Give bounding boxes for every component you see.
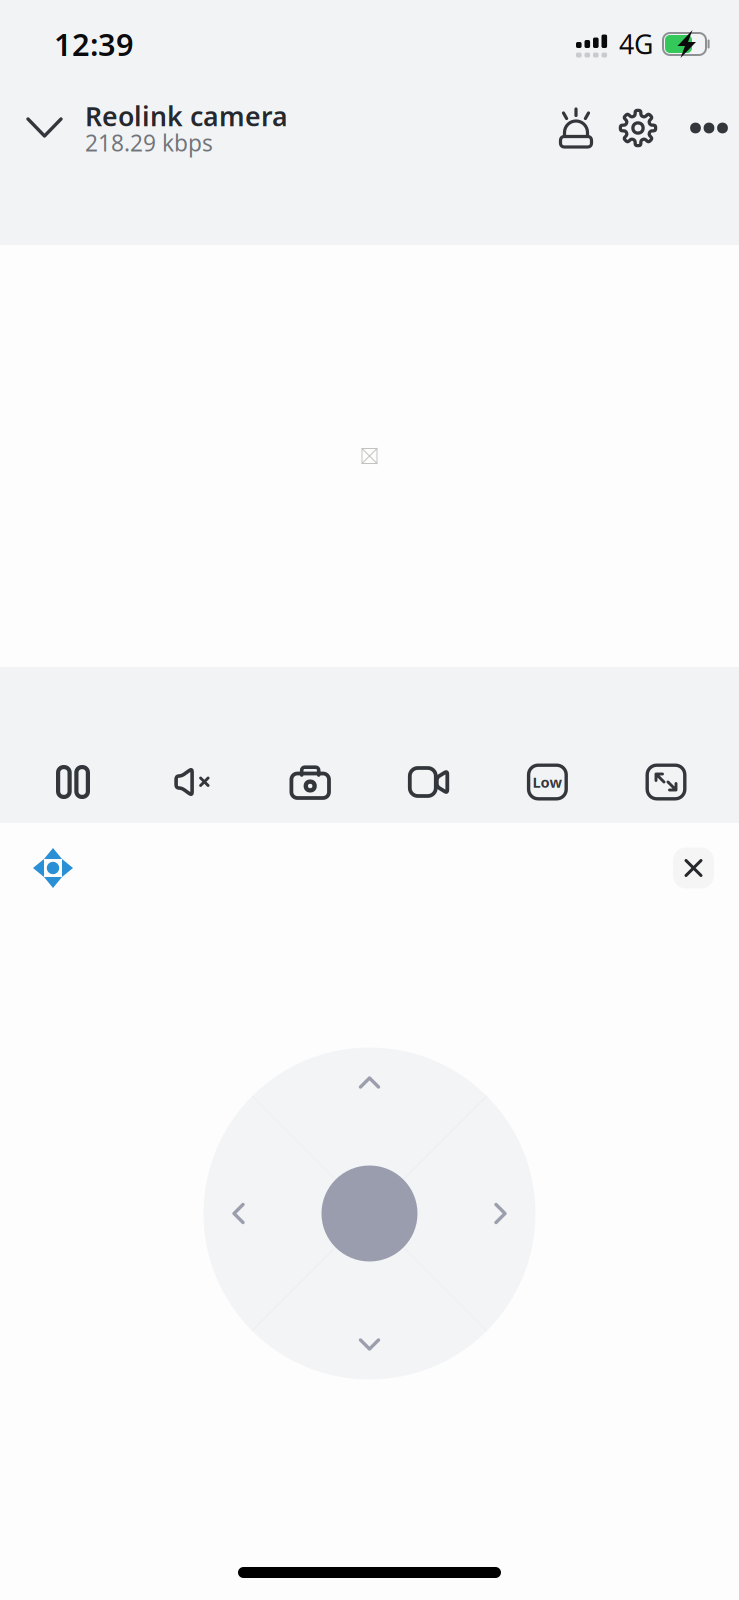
button[interactable]: More options (690, 99, 728, 157)
button[interactable]: Close (673, 847, 714, 888)
button[interactable]: Siren (559, 99, 593, 157)
button[interactable]: Mute (143, 752, 241, 812)
button[interactable]: Pause (24, 752, 122, 812)
button[interactable]: Record (380, 752, 478, 812)
button[interactable]: Settings (615, 99, 661, 157)
button[interactable]: Full screen (617, 752, 715, 812)
staticText: Reolink camera (85, 98, 288, 134)
image (361, 448, 377, 464)
staticText: 12:39 (54, 24, 134, 64)
staticText: 218.29 kbps (85, 128, 213, 158)
button[interactable]: Stream quality low (498, 752, 596, 812)
button[interactable]: Snapshot (261, 752, 359, 812)
button[interactable]: Collapse (17, 98, 72, 158)
staticText: 4G (619, 26, 653, 62)
button[interactable]: Pan and tilt (16, 835, 90, 901)
staticText: Low (532, 772, 562, 792)
